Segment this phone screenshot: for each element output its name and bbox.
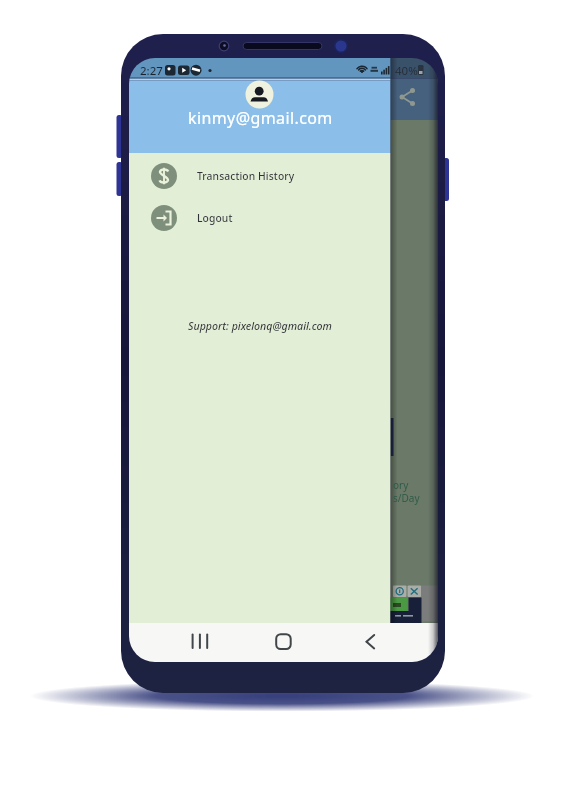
staticText: Logout — [197, 211, 233, 225]
staticText: ory — [393, 478, 409, 492]
button[interactable] — [357, 628, 387, 656]
button[interactable] — [268, 628, 300, 656]
staticText: kinmy@gmail.com — [188, 107, 333, 129]
button[interactable]: Logout — [149, 204, 371, 232]
staticText: 2:27 — [140, 63, 163, 79]
button[interactable]: Transaction History — [149, 162, 371, 190]
staticText: 40% — [395, 63, 418, 79]
button[interactable] — [184, 628, 214, 656]
staticText: s/Day — [393, 491, 420, 505]
staticText: Support: pixelonq@gmail.com — [188, 319, 332, 333]
button[interactable] — [393, 83, 421, 111]
staticText: Transaction History — [197, 169, 295, 183]
